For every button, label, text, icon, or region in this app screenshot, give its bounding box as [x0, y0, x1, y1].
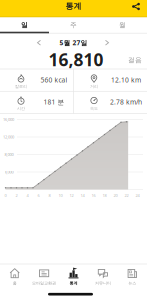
staticText: 16,810: [48, 48, 103, 71]
staticText: 2: [15, 193, 17, 198]
staticText: 5월 27일: [59, 38, 87, 47]
staticText: 6: [37, 193, 39, 198]
staticText: 0: [4, 193, 6, 198]
staticText: 20: [113, 193, 117, 198]
button[interactable]: 모바일교환권: [29, 264, 59, 288]
staticText: 10: [58, 193, 62, 198]
staticText: 통계: [65, 1, 81, 11]
button[interactable]: 월: [98, 17, 147, 33]
staticText: 12.10 km: [111, 76, 141, 84]
staticText: 통계: [69, 281, 77, 286]
button[interactable]: 홈: [0, 264, 29, 288]
staticText: 4,000: [4, 169, 13, 175]
button[interactable]: 통계: [59, 264, 88, 288]
button[interactable]: 이전 날짜: [35, 39, 43, 47]
staticText: 12: [69, 193, 73, 198]
staticText: 시간: [17, 106, 25, 111]
staticText: 8: [48, 193, 50, 198]
staticText: 16,000: [3, 117, 14, 122]
button[interactable]: 일: [0, 17, 49, 33]
staticText: 홈: [13, 281, 17, 286]
staticText: 걸음: [128, 56, 142, 64]
staticText: 2.78 km/h: [110, 98, 142, 106]
staticText: 칼로리: [15, 84, 27, 89]
staticText: 560 kcal: [40, 76, 67, 84]
button[interactable]: 다음 날짜: [103, 39, 111, 47]
staticText: 주: [70, 21, 77, 29]
staticText: 14: [80, 193, 84, 198]
staticText: 22: [124, 193, 128, 198]
staticText: 속도: [90, 106, 98, 111]
staticText: 18: [102, 193, 106, 198]
staticText: 월: [119, 21, 126, 29]
staticText: 4: [26, 193, 28, 198]
staticText: 모바일교환권: [32, 281, 56, 286]
staticText: 뉴스: [128, 281, 136, 286]
staticText: 181 분: [43, 98, 64, 106]
staticText: 커뮤니티: [95, 281, 111, 286]
button[interactable]: 뉴스: [118, 264, 147, 288]
staticText: 8,000: [4, 152, 13, 157]
staticText: 24: [135, 193, 139, 198]
staticText: 12,000: [3, 134, 14, 140]
staticText: 16: [91, 193, 95, 198]
staticText: 거리: [90, 84, 98, 89]
button[interactable]: 주: [49, 17, 98, 33]
button[interactable]: 커뮤니티: [88, 264, 118, 288]
staticText: 일: [21, 21, 28, 29]
button[interactable]: 공유: [129, 0, 143, 13]
